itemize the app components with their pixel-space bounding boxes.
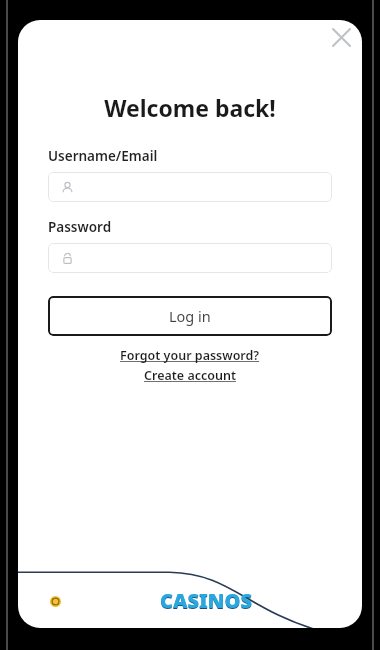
button[interactable]: Log in [48,296,332,336]
button[interactable]: Casinos.cc home [50,574,362,628]
staticText: Log in [169,306,211,326]
staticText: Welcome back! [48,92,332,123]
button[interactable]: Forgot your password? [120,347,260,364]
staticText: Password [48,218,112,236]
button[interactable]: Close [324,20,358,54]
staticText: Create account [144,367,237,384]
button[interactable]: Create account [144,367,237,384]
staticText: CASINOS [160,588,252,615]
staticText: Username/Email [48,147,158,165]
button[interactable] [48,243,332,273]
staticText: CASINOS [160,587,252,614]
staticText: Forgot your password? [120,347,260,364]
button[interactable] [48,172,332,202]
